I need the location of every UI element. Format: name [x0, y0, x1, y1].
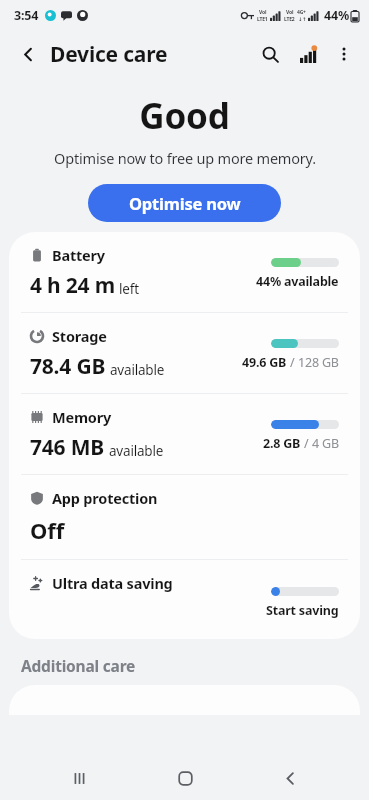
- staticText: 49.6 GB: [242, 354, 287, 371]
- staticText: LTE2: [284, 16, 295, 23]
- staticText: Vol: [286, 9, 294, 16]
- staticText: Additional care: [21, 655, 136, 676]
- staticText: Good: [139, 92, 230, 140]
- staticText: left: [119, 280, 139, 298]
- staticText: Ultra data saving: [52, 573, 173, 593]
- button[interactable]: Usage statistics: [291, 37, 325, 71]
- staticText: 4 h 24 m: [30, 271, 115, 300]
- button[interactable]: Back: [263, 756, 317, 800]
- staticText: 746 MB: [30, 433, 105, 462]
- staticText: Vol: [259, 9, 267, 16]
- staticText: Optimise now: [129, 192, 241, 214]
- staticText: 4 GB: [312, 435, 339, 452]
- staticText: 44%: [324, 7, 349, 24]
- staticText: available: [110, 361, 165, 379]
- button[interactable]: Optimise now: [88, 184, 281, 222]
- staticText: Battery: [52, 245, 105, 265]
- staticText: Optimise now to free up more memory.: [54, 148, 316, 168]
- button[interactable]: App protection: [9, 475, 360, 559]
- button[interactable]: Home: [158, 756, 212, 800]
- staticText: Memory: [52, 407, 112, 427]
- staticText: available: [109, 442, 164, 460]
- staticText: App protection: [52, 488, 158, 508]
- staticText: Off: [30, 515, 64, 545]
- staticText: Device care: [50, 40, 168, 69]
- staticText: 44% available: [256, 273, 339, 290]
- button[interactable]: Memory: [9, 394, 360, 474]
- staticText: Start saving: [266, 602, 339, 619]
- staticText: LTE1: [257, 16, 268, 23]
- staticText: 128 GB: [298, 354, 339, 371]
- staticText: /: [301, 435, 312, 452]
- staticText: /: [287, 354, 298, 371]
- button[interactable]: More options: [327, 37, 361, 71]
- staticText: 78.4 GB: [30, 352, 106, 381]
- button[interactable]: Recents: [52, 756, 106, 800]
- button[interactable]: Back: [12, 38, 44, 70]
- staticText: 2.8 GB: [263, 435, 301, 452]
- button[interactable]: Storage: [9, 313, 360, 393]
- button[interactable]: Ultra data saving: [9, 560, 360, 633]
- staticText: Storage: [52, 326, 107, 346]
- staticText: 4G+: [297, 9, 306, 16]
- button[interactable]: Battery: [9, 232, 360, 312]
- staticText: ↓↑: [298, 16, 306, 22]
- staticText: 3:54: [14, 7, 39, 24]
- button[interactable]: Search: [253, 37, 287, 71]
